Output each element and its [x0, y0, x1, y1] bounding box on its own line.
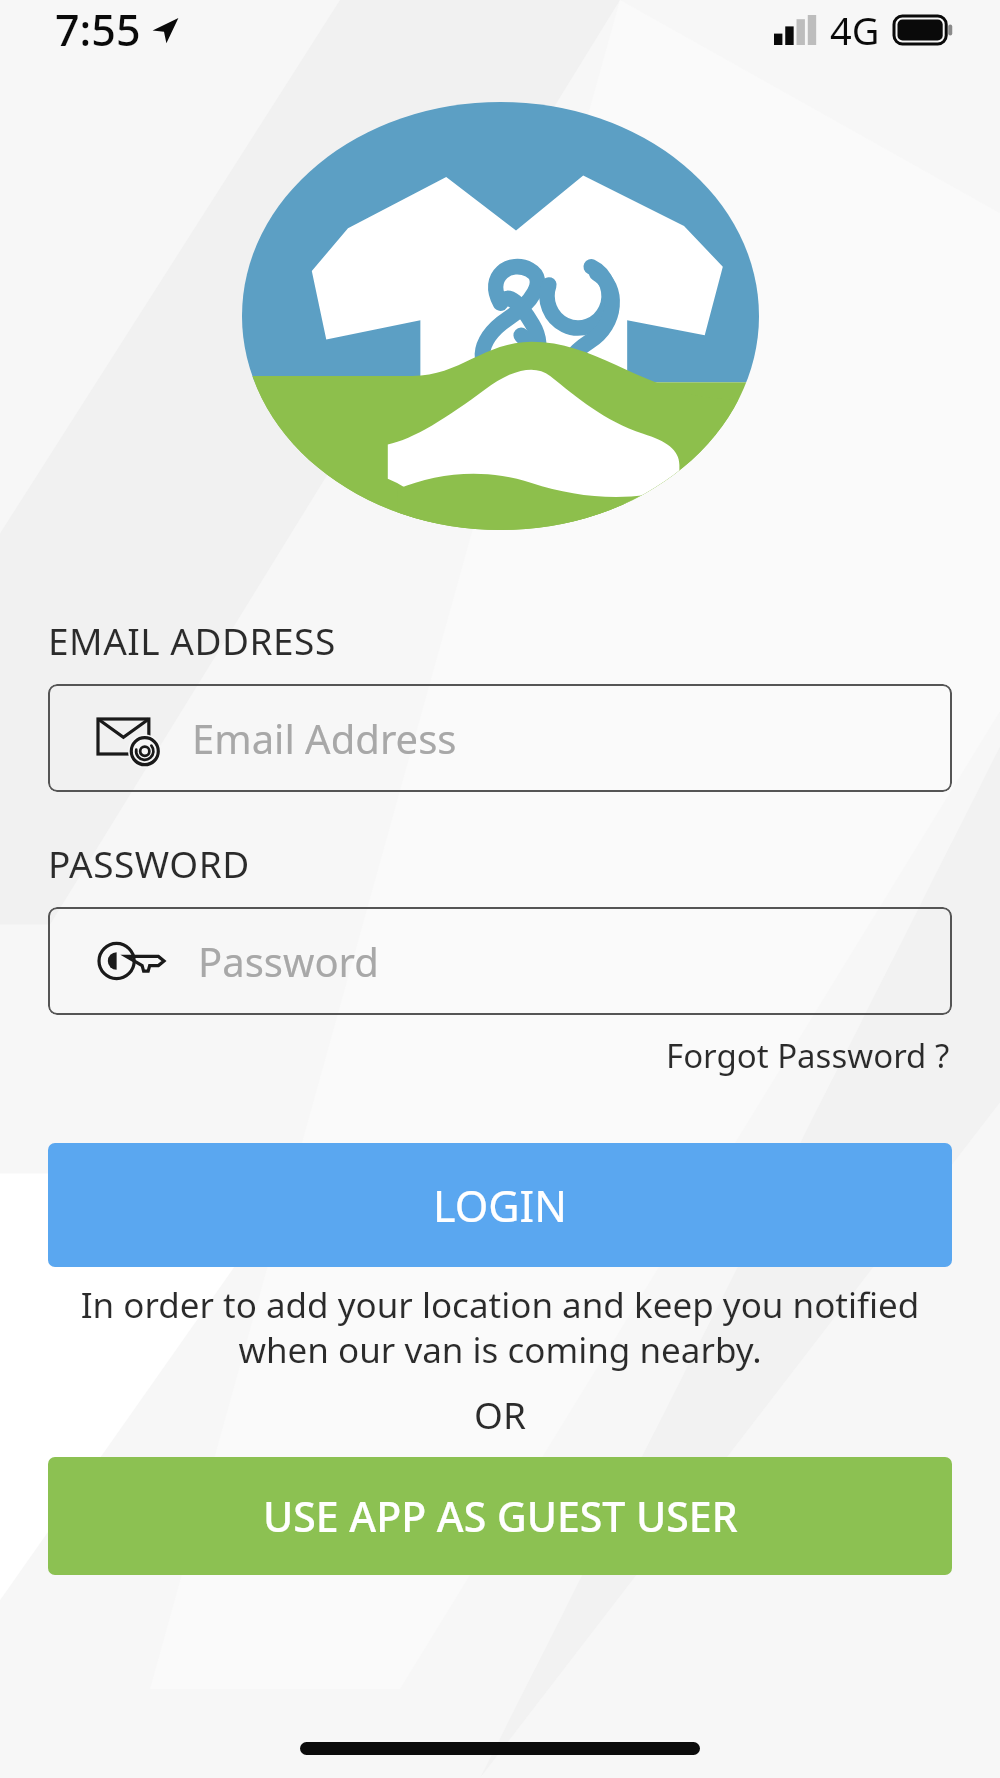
- staticText: EMAIL ADDRESS: [48, 615, 336, 665]
- staticText: Password: [198, 934, 379, 988]
- staticText: 7:55: [55, 0, 141, 59]
- staticText: PASSWORD: [48, 838, 250, 888]
- staticText: 4G: [830, 4, 880, 56]
- button[interactable]: Email Address: [48, 684, 952, 792]
- button[interactable]: LOGIN: [48, 1143, 952, 1267]
- button[interactable]: USE APP AS GUEST USER: [48, 1457, 952, 1575]
- staticText: Forgot Password ?: [666, 1033, 950, 1078]
- button[interactable]: Password: [48, 907, 952, 1015]
- button[interactable]: Forgot Password ?: [664, 1027, 952, 1084]
- staticText: OR: [48, 1389, 952, 1439]
- staticText: USE APP AS GUEST USER: [263, 1488, 738, 1544]
- staticText: LOGIN: [433, 1176, 567, 1235]
- staticText: Email Address: [192, 711, 457, 765]
- staticText: In order to add your location and keep y…: [48, 1281, 952, 1373]
